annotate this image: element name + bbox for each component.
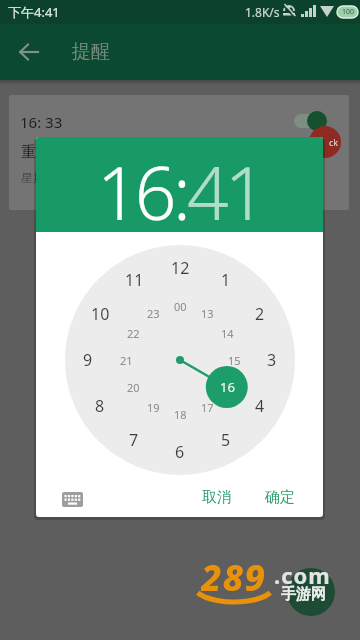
button[interactable]: 确定: [252, 479, 308, 515]
staticText: 20: [127, 380, 140, 395]
button[interactable]: [50, 480, 94, 517]
staticText: 00: [174, 299, 187, 314]
staticText: ck: [329, 136, 339, 148]
staticText: 1.8K/s: [245, 4, 280, 20]
staticText: 取消: [202, 488, 232, 507]
staticText: 8: [95, 395, 105, 417]
button[interactable]: ck: [309, 126, 341, 158]
staticText: 提醒: [72, 40, 110, 64]
staticText: 9: [83, 349, 93, 371]
staticText: 15: [228, 353, 241, 368]
staticText: 下午4:41: [8, 3, 60, 21]
staticText: 星期六 下午: [21, 169, 85, 185]
button[interactable]: 16: 33: [9, 95, 349, 210]
button[interactable]: [294, 114, 326, 128]
button[interactable]: 取消: [189, 479, 245, 515]
staticText: 手游网: [281, 585, 326, 604]
staticText: .com: [274, 560, 331, 588]
staticText: 11: [125, 269, 144, 291]
staticText: 17: [201, 400, 214, 415]
staticText: :: [173, 142, 187, 237]
staticText: 3: [267, 349, 277, 371]
staticText: 重复: [21, 143, 51, 162]
staticText: 12: [171, 257, 190, 279]
staticText: 19: [147, 400, 160, 415]
staticText: 13: [201, 306, 214, 321]
staticText: 41: [187, 142, 263, 237]
staticText: 289: [201, 553, 267, 593]
staticText: 14: [221, 326, 234, 341]
staticText: 确定: [265, 488, 295, 507]
staticText: 10: [91, 303, 110, 325]
staticText: 22: [127, 326, 140, 341]
staticText: 23: [147, 306, 160, 321]
button[interactable]: [5, 28, 53, 76]
staticText: 4: [255, 395, 265, 417]
staticText: 16: [97, 142, 173, 237]
staticText: 16: [220, 378, 235, 396]
staticText: 1: [221, 269, 231, 291]
staticText: 7: [129, 429, 139, 451]
staticText: 16: 33: [20, 112, 63, 132]
staticText: 5: [221, 429, 231, 451]
staticText: 2: [255, 303, 265, 325]
staticText: 100: [342, 7, 355, 17]
staticText: 6: [175, 441, 185, 463]
staticText: 18: [174, 407, 187, 422]
staticText: 21: [120, 353, 133, 368]
